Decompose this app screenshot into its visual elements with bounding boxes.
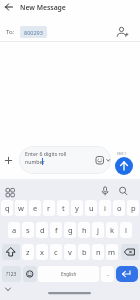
- button[interactable]: [114, 24, 130, 40]
- button[interactable]: [116, 184, 130, 198]
- button[interactable]: m: [106, 244, 118, 260]
- staticText: 800293: [24, 29, 43, 36]
- button[interactable]: New Message: [0, 0, 140, 16]
- staticText: New Message: [20, 3, 66, 12]
- button[interactable]: c: [50, 244, 62, 260]
- button[interactable]: y: [71, 200, 83, 216]
- staticText: m: [108, 247, 116, 257]
- button[interactable]: h: [78, 222, 90, 238]
- staticText: English: [61, 271, 77, 277]
- staticText: u: [89, 203, 94, 213]
- staticText: x: [40, 247, 44, 257]
- button[interactable]: z: [22, 244, 34, 260]
- button[interactable]: [2, 244, 20, 260]
- button[interactable]: ?123: [2, 266, 21, 282]
- button[interactable]: n: [92, 244, 104, 260]
- button[interactable]: w: [15, 200, 27, 216]
- staticText: i: [104, 203, 106, 213]
- staticText: h: [82, 225, 87, 235]
- button[interactable]: Enter 6 digits roll: [19, 146, 111, 174]
- button[interactable]: r: [43, 200, 55, 216]
- staticText: w: [18, 203, 24, 213]
- button[interactable]: g: [64, 222, 76, 238]
- staticText: ?123: [6, 271, 17, 278]
- staticText: To:: [6, 28, 15, 36]
- button[interactable]: x: [36, 244, 48, 260]
- button[interactable]: s: [22, 222, 34, 238]
- staticText: Enter 6 digits roll: [25, 150, 67, 157]
- button[interactable]: 800293: [20, 26, 47, 38]
- staticText: v: [68, 247, 72, 257]
- staticText: .: [107, 269, 109, 279]
- staticText: r: [47, 203, 51, 213]
- staticText: y: [75, 203, 79, 213]
- staticText: c: [54, 247, 58, 257]
- staticText: SMS 1: [117, 152, 127, 156]
- button[interactable]: [121, 244, 139, 260]
- button[interactable]: u: [85, 200, 97, 216]
- staticText: a: [12, 225, 17, 235]
- button[interactable]: [3, 154, 17, 168]
- button[interactable]: q: [1, 200, 13, 216]
- staticText: b: [82, 247, 87, 257]
- staticText: f: [55, 225, 58, 235]
- staticText: k: [110, 225, 115, 235]
- button[interactable]: [23, 266, 37, 282]
- staticText: number: [25, 158, 45, 165]
- button[interactable]: a: [8, 222, 20, 238]
- button[interactable]: e: [29, 200, 41, 216]
- staticText: e: [33, 203, 38, 213]
- staticText: q: [5, 203, 10, 213]
- button[interactable]: d: [36, 222, 48, 238]
- staticText: p: [131, 203, 136, 213]
- button[interactable]: .: [101, 266, 114, 282]
- button[interactable]: [116, 266, 138, 282]
- staticText: o: [117, 203, 122, 213]
- staticText: j: [97, 225, 99, 235]
- button[interactable]: [98, 184, 112, 198]
- button[interactable]: [3, 185, 17, 199]
- button[interactable]: f: [50, 222, 62, 238]
- staticText: t: [62, 203, 65, 213]
- button[interactable]: i: [99, 200, 111, 216]
- button[interactable]: t: [57, 200, 69, 216]
- button[interactable]: v: [64, 244, 76, 260]
- staticText: s: [26, 225, 30, 235]
- staticText: l: [125, 225, 127, 235]
- staticText: n: [96, 247, 101, 257]
- staticText: d: [40, 225, 45, 235]
- button[interactable]: English: [38, 266, 99, 282]
- button[interactable]: [115, 157, 133, 175]
- button[interactable]: o: [113, 200, 125, 216]
- staticText: z: [26, 247, 30, 257]
- button[interactable]: k: [106, 222, 118, 238]
- button[interactable]: b: [78, 244, 90, 260]
- button[interactable]: p: [127, 200, 139, 216]
- button[interactable]: l: [120, 222, 132, 238]
- button[interactable]: j: [92, 222, 104, 238]
- staticText: g: [68, 225, 73, 235]
